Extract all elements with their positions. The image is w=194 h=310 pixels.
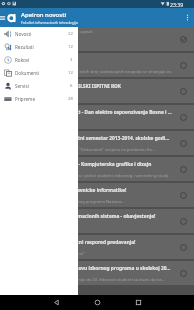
button[interactable]: Obavjestenje studentima o osnovu izborno…	[0, 261, 194, 285]
staticText: Pripreme	[15, 96, 35, 102]
staticText: Obavjestenje o terminu vjezbe - Kompjute…	[4, 161, 152, 168]
button[interactable]: Obavjestenje studentima informacionih si…	[0, 209, 194, 233]
staticText: Dokumenti	[15, 70, 39, 76]
button[interactable]: Obavjestavaju se studenti da je pristup …	[0, 27, 194, 51]
staticText: 12	[68, 44, 73, 50]
staticText: 23:39	[170, 1, 184, 8]
staticText: Obavjestavaju se studenti da je pristup …	[4, 29, 93, 35]
button[interactable]: Rokovi	[0, 53, 78, 66]
staticText: 6	[70, 83, 73, 89]
button[interactable]: Rezultati	[0, 40, 78, 53]
staticText: Obavjestenje studentima o osnovu izborno…	[4, 265, 171, 272]
button[interactable]: Home	[87, 295, 107, 310]
staticText: Obavjestenje studentima za ljetni semest…	[4, 135, 172, 142]
button[interactable]: Obavjestenje studentima Nastavnicke info…	[0, 183, 194, 207]
button[interactable]: Obavjestenje studentima - ispitni raspor…	[0, 235, 194, 259]
staticText: Rokovi	[15, 57, 30, 63]
button[interactable]: Novosti	[0, 27, 78, 40]
button[interactable]: Recents	[128, 295, 148, 310]
button[interactable]: Obavjestenje studentima	[0, 53, 194, 77]
button[interactable]: Obavjestenje studentima za ljetni semest…	[0, 131, 194, 155]
staticText: Obavjestenje studentima - ispitni raspor…	[4, 239, 136, 246]
staticText: Apeiron novosti	[21, 11, 67, 19]
staticText: Obiljezavanje dana nezavisnosti - Dan el…	[4, 109, 172, 116]
staticText: Fakultet informacionih tehnologija	[21, 20, 78, 25]
staticText: Rezultati	[15, 44, 34, 50]
button[interactable]: Dokumenti	[0, 66, 78, 79]
staticText: Obavjestavaju se svi studenti koji polaz…	[4, 173, 170, 179]
staticText: Postavljena su nova predavanja i dijelu …	[4, 147, 156, 153]
staticText: 3	[70, 57, 73, 63]
staticText: Obavjestenje za studente - APRILSKI ISPI…	[4, 83, 122, 90]
staticText: 28	[68, 96, 73, 102]
staticText: 12	[68, 70, 73, 76]
staticText: Obavjestenje studentima informacionih si…	[4, 213, 156, 220]
staticText: Postavljen je novi raspored u "Dokumenti…	[4, 251, 86, 257]
staticText: Smanjenjem brzine kretanja vozila za 1 k…	[4, 69, 172, 75]
button[interactable]: Open navigation drawer	[0, 14, 6, 22]
staticText: Obavjestenje studentima Nastavnicke info…	[4, 187, 127, 194]
button[interactable]: Obavjestenje za studente - APRILSKI ISPI…	[0, 79, 194, 103]
staticText: Obavjestavaju se studenti da su najkasni…	[4, 277, 165, 283]
staticText: Novosti	[15, 31, 32, 37]
button[interactable]: More options	[180, 8, 194, 27]
button[interactable]: Obavjestenje o terminu vjezbe - Kompjute…	[0, 157, 194, 181]
button[interactable]: Obiljezavanje dana nezavisnosti - Dan el…	[0, 105, 194, 129]
staticText: 22	[68, 31, 73, 37]
button[interactable]: Pripreme	[0, 92, 78, 105]
staticText: U skladu sa nastavnim planom, studijskog…	[4, 199, 125, 205]
button[interactable]: Back	[46, 295, 66, 310]
staticText: Obavjestenje studentima	[4, 57, 65, 64]
staticText: Servisi	[15, 83, 29, 89]
button[interactable]: Servisi	[0, 79, 78, 92]
